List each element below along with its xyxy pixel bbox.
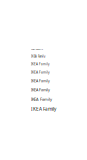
staticText: IKEA Family <box>31 55 45 58</box>
staticText: IKEA Family <box>31 78 50 83</box>
staticText: IKEA Family <box>31 106 56 112</box>
staticText: IKEA Family <box>31 70 50 75</box>
staticText: IKEA Family <box>31 48 43 50</box>
staticText: IKEA Family <box>31 87 50 92</box>
staticText: IKEA Family <box>31 62 49 66</box>
staticText: IKEA Family <box>31 96 52 102</box>
